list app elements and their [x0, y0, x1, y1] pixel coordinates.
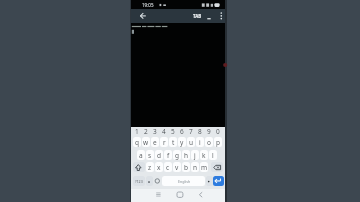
staticText: z — [148, 163, 152, 172]
staticText: English — [178, 179, 191, 184]
button[interactable]: 9 — [205, 127, 213, 136]
button[interactable] — [162, 176, 205, 186]
staticText: l — [212, 151, 214, 160]
button[interactable]: u — [187, 137, 195, 147]
staticText: t — [172, 138, 175, 147]
staticText: f — [167, 151, 170, 160]
button[interactable]: c — [164, 162, 172, 172]
button[interactable]: h — [182, 150, 190, 160]
staticText: 19:05 — [142, 2, 154, 8]
button[interactable]: d — [155, 150, 163, 160]
button[interactable]: v — [173, 162, 181, 172]
staticText: 2 — [144, 127, 148, 136]
staticText: 0 — [216, 127, 220, 136]
staticText: h — [184, 151, 189, 160]
button[interactable]: j — [191, 150, 199, 160]
staticText: 4 — [162, 127, 166, 136]
staticText: m — [201, 163, 208, 172]
button[interactable] — [197, 189, 207, 201]
button[interactable]: f — [164, 150, 172, 160]
button[interactable]: l — [209, 150, 217, 160]
button[interactable]: e — [151, 137, 159, 147]
staticText: u — [189, 138, 194, 147]
button[interactable] — [137, 10, 149, 22]
staticText: g — [175, 151, 179, 160]
staticText: e — [153, 138, 157, 147]
staticText: 3 — [153, 127, 157, 136]
staticText: b — [184, 163, 188, 172]
button[interactable]: 3 — [151, 127, 159, 136]
button[interactable]: p — [214, 137, 222, 147]
staticText: q — [135, 138, 139, 147]
staticText: 1 — [135, 127, 139, 136]
button[interactable]: 0 — [214, 127, 222, 136]
button[interactable]: r — [160, 137, 168, 147]
button[interactable]: k — [200, 150, 208, 160]
button[interactable]: a — [137, 150, 145, 160]
button[interactable] — [213, 176, 224, 186]
staticText: x — [157, 163, 161, 172]
button[interactable]: q — [133, 137, 141, 147]
staticText: 5 — [171, 127, 175, 136]
staticText: j — [194, 151, 196, 160]
button[interactable]: s — [146, 150, 154, 160]
button[interactable]: i — [196, 137, 204, 147]
button[interactable]: 5 — [169, 127, 177, 136]
staticText: w — [143, 138, 149, 147]
button[interactable]: 7 — [187, 127, 195, 136]
button[interactable]: b — [182, 162, 190, 172]
button[interactable]: t — [169, 137, 177, 147]
staticText: r — [163, 138, 166, 147]
button[interactable]: ?123 — [133, 176, 145, 186]
staticText: s — [148, 151, 152, 160]
staticText: 6 — [180, 127, 184, 136]
staticText: ?123 — [135, 179, 143, 184]
staticText: k — [202, 151, 206, 160]
button[interactable] — [175, 189, 185, 201]
staticText: d — [157, 151, 161, 160]
button[interactable]: n — [191, 162, 199, 172]
button[interactable] — [206, 176, 213, 186]
button[interactable]: 1 — [133, 127, 141, 136]
staticText: c — [166, 163, 170, 172]
staticText: v — [175, 163, 179, 172]
button[interactable] — [133, 162, 145, 172]
button[interactable]: TAB — [193, 13, 202, 19]
button[interactable]: y — [178, 137, 186, 147]
button[interactable] — [216, 10, 226, 22]
button[interactable] — [153, 189, 163, 201]
staticText: 9 — [207, 127, 211, 136]
button[interactable] — [131, 9, 225, 23]
staticText: p — [216, 138, 220, 147]
staticText: a — [139, 151, 143, 160]
button[interactable] — [211, 162, 223, 172]
button[interactable]: m — [200, 162, 208, 172]
button[interactable]: g — [173, 150, 181, 160]
staticText: 7 — [189, 127, 193, 136]
button[interactable]: w — [142, 137, 150, 147]
staticText: n — [193, 163, 198, 172]
button[interactable]: 2 — [142, 127, 150, 136]
staticText: o — [207, 138, 211, 147]
staticText: y — [180, 138, 184, 147]
button[interactable]: x — [155, 162, 163, 172]
button[interactable]: 6 — [178, 127, 186, 136]
staticText: 8 — [198, 127, 202, 136]
staticText: i — [199, 138, 201, 147]
button[interactable]: 8 — [196, 127, 204, 136]
button[interactable]: z — [146, 162, 154, 172]
button[interactable]: o — [205, 137, 213, 147]
button[interactable] — [131, 23, 225, 127]
button[interactable] — [146, 176, 153, 186]
button[interactable]: 4 — [160, 127, 168, 136]
